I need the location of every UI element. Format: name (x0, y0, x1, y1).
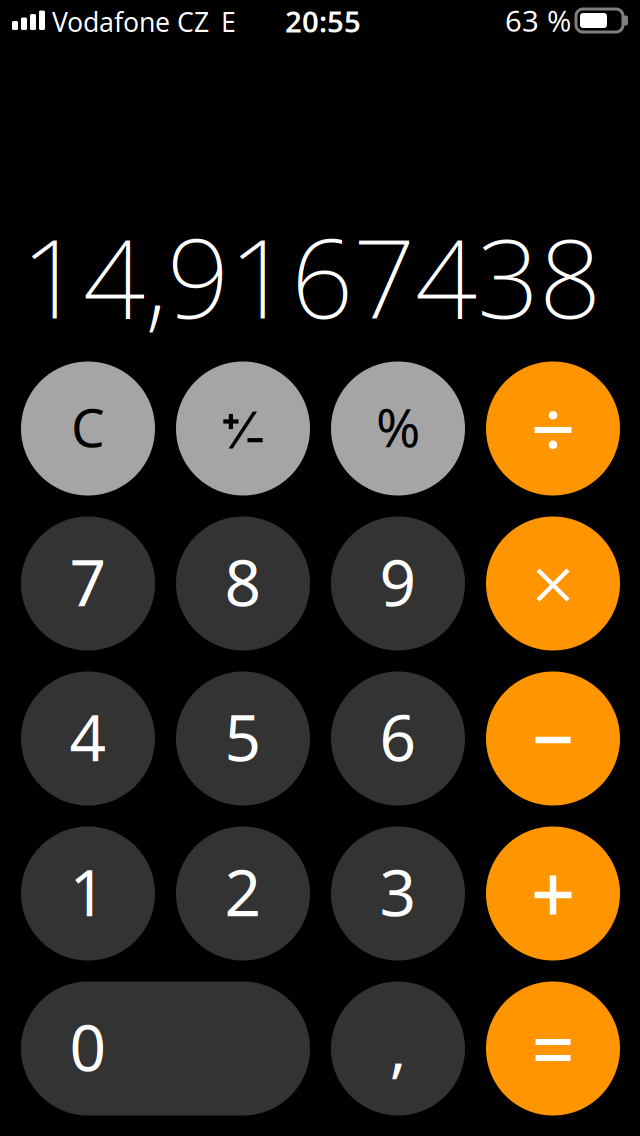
staticText: C (71, 391, 105, 462)
button[interactable]: 1 (21, 826, 155, 960)
button[interactable]: Divide (486, 361, 620, 495)
button[interactable]: % (331, 361, 465, 495)
staticText: 2 (224, 849, 261, 934)
staticText: , (389, 1004, 406, 1089)
button[interactable]: 9 (331, 516, 465, 650)
button[interactable]: 3 (331, 826, 465, 960)
staticText: 63 % (505, 1, 571, 40)
button[interactable]: 0 (21, 981, 310, 1115)
staticText: 3 (379, 849, 416, 934)
staticText: 20:55 (285, 1, 361, 40)
button[interactable]: , (331, 981, 465, 1115)
button[interactable]: Equals (486, 981, 620, 1115)
staticText: 14,9167438 (21, 203, 601, 349)
button[interactable]: Subtract (486, 671, 620, 805)
button[interactable]: 2 (176, 826, 310, 960)
staticText: 8 (224, 539, 261, 624)
button[interactable]: C (21, 361, 155, 495)
staticText: 5 (224, 694, 261, 779)
staticText: 7 (69, 539, 106, 624)
button[interactable]: Multiply (486, 516, 620, 650)
button[interactable]: 8 (176, 516, 310, 650)
button[interactable]: 6 (331, 671, 465, 805)
staticText: 9 (379, 539, 416, 624)
staticText: E (221, 4, 236, 39)
staticText: 6 (379, 694, 416, 779)
button[interactable]: Toggle sign (176, 361, 310, 495)
staticText: 1 (69, 849, 106, 934)
button[interactable]: 5 (176, 671, 310, 805)
button[interactable]: 7 (21, 516, 155, 650)
button[interactable]: Add (486, 826, 620, 960)
staticText: 0 (69, 1004, 106, 1089)
button[interactable]: 4 (21, 671, 155, 805)
staticText: % (376, 391, 420, 462)
staticText: Vodafone CZ (52, 4, 209, 39)
staticText: 4 (69, 694, 106, 779)
